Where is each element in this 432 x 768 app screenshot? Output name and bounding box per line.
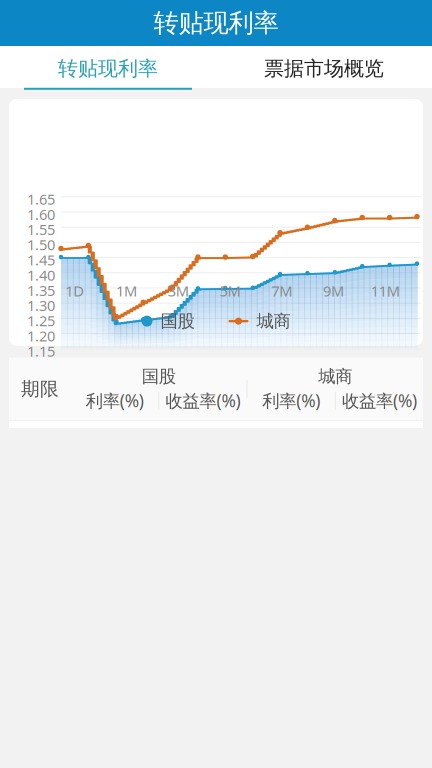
staticText: 11M: [371, 281, 400, 300]
staticText: 转贴现利率: [58, 56, 158, 81]
staticText: 9M: [323, 281, 344, 300]
staticText: 1M: [116, 281, 137, 300]
staticText: 转贴现利率: [153, 7, 278, 38]
staticText: 收益率(%): [165, 389, 240, 412]
staticText: 利率(%): [86, 389, 144, 412]
staticText: 1.20: [27, 326, 55, 346]
staticText: 1.30: [27, 296, 55, 315]
staticText: 1.50: [27, 235, 55, 254]
staticText: 期限: [21, 377, 59, 400]
staticText: 利率(%): [262, 389, 320, 412]
staticText: 国股: [160, 310, 194, 332]
staticText: 1.45: [27, 250, 55, 270]
button[interactable]: 转贴现利率: [0, 44, 216, 90]
staticText: 7M: [271, 281, 292, 300]
button[interactable]: 票据市场概览: [216, 44, 432, 90]
staticText: 国股: [142, 366, 176, 387]
staticText: 1.25: [27, 311, 55, 330]
staticText: 1.55: [27, 220, 55, 239]
staticText: 收益率(%): [342, 389, 417, 412]
staticText: 城商: [318, 366, 352, 387]
staticText: 1.15: [27, 341, 55, 361]
staticText: 1.35: [27, 280, 55, 300]
staticText: 5M: [219, 281, 240, 300]
staticText: 1D: [65, 281, 84, 300]
button[interactable]: 1D: [9, 421, 423, 470]
staticText: 3M: [168, 281, 189, 300]
staticText: 1.65: [27, 189, 55, 209]
staticText: 1.60: [27, 204, 55, 224]
staticText: 票据市场概览: [264, 56, 384, 81]
staticText: 1.40: [27, 265, 55, 285]
staticText: 城商: [256, 310, 290, 332]
